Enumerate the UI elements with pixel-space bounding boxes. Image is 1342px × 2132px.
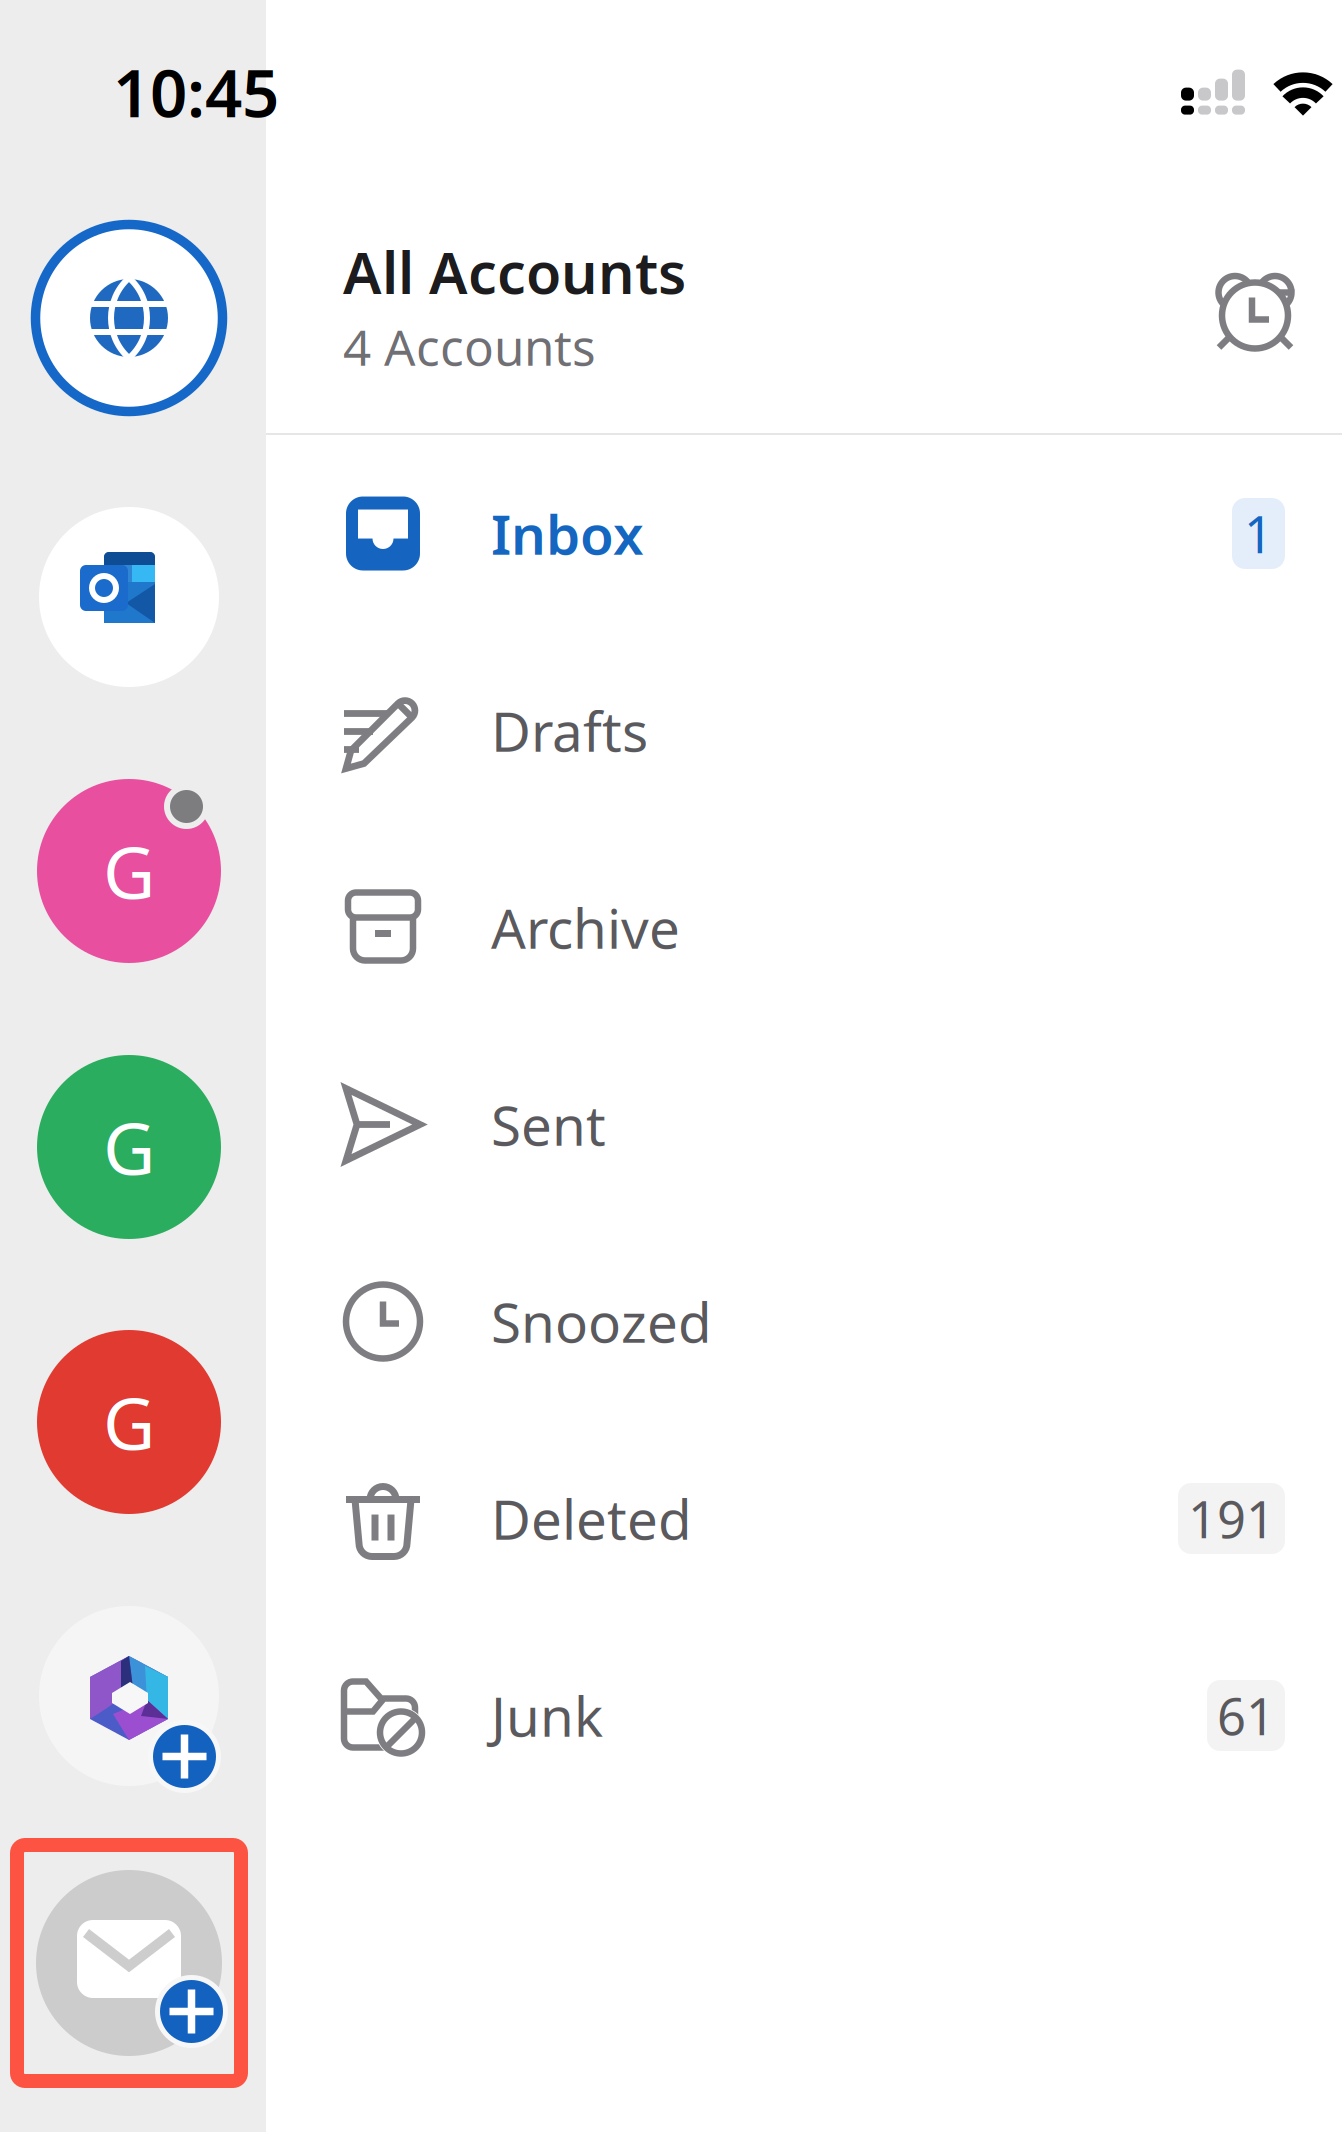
button[interactable]: Account G [37,1330,221,1514]
staticText: G [103,1099,155,1195]
button[interactable]: Outlook account [39,507,219,687]
button[interactable]: Sent [266,1026,1342,1223]
button[interactable]: Inbox [266,435,1342,632]
staticText: Snoozed [491,1285,712,1358]
staticText: 4 Accounts [343,314,596,379]
button[interactable]: Drafts [266,632,1342,829]
staticText: G [103,823,155,919]
staticText: Sent [491,1088,606,1161]
button[interactable]: All Accounts [31,220,227,416]
button[interactable]: Deleted [266,1420,1342,1617]
staticText: All Accounts [343,234,686,310]
staticText: 10:45 [113,49,279,135]
button[interactable]: Add mail account [10,1838,248,2088]
staticText: Archive [491,891,680,964]
staticText: G [103,1374,155,1470]
staticText: 191 [1188,1485,1275,1552]
staticText: Drafts [491,694,648,767]
staticText: Inbox [491,497,644,570]
button[interactable]: Account G [37,1055,221,1239]
staticText: Junk [491,1679,603,1752]
button[interactable]: Account G [37,779,221,963]
button[interactable]: Do Not Disturb [1206,255,1304,357]
button[interactable]: Archive [266,829,1342,1026]
staticText: 1 [1244,500,1273,567]
button[interactable]: Add Microsoft 365 account [39,1606,219,1786]
staticText: Deleted [491,1482,692,1555]
button[interactable]: Junk [266,1617,1342,1814]
button[interactable]: Snoozed [266,1223,1342,1420]
staticText: 61 [1217,1682,1275,1749]
